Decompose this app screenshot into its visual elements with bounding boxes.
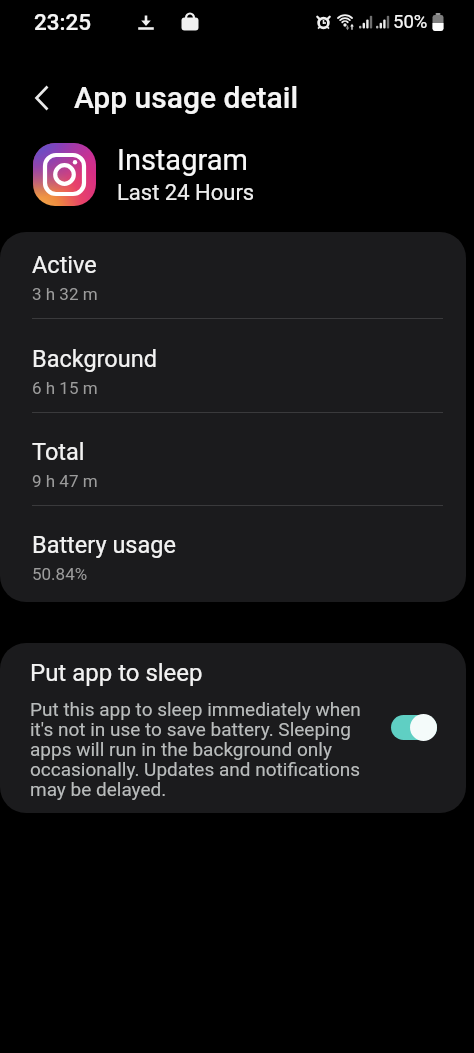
button[interactable] <box>391 714 437 741</box>
button[interactable]: Background <box>0 319 466 412</box>
staticText: Put app to sleep <box>30 659 203 687</box>
staticText: 3 h 32 m <box>32 284 98 304</box>
staticText: Last 24 Hours <box>117 180 255 206</box>
button[interactable] <box>22 78 62 118</box>
button[interactable]: Battery usage <box>0 506 466 602</box>
staticText: 9 h 47 m <box>32 471 98 491</box>
staticText: 50% <box>393 11 428 33</box>
button[interactable]: Total <box>0 413 466 505</box>
staticText: Total <box>32 438 85 466</box>
staticText: Put this app to sleep immediately when i… <box>30 698 361 800</box>
staticText: Active <box>32 251 97 279</box>
staticText: 50.84% <box>32 564 88 584</box>
staticText: Battery usage <box>32 531 176 559</box>
staticText: App usage detail <box>74 80 299 115</box>
staticText: Instagram <box>117 143 248 177</box>
button[interactable]: Active <box>0 232 466 318</box>
staticText: Background <box>32 345 157 373</box>
staticText: 23:25 <box>34 9 92 35</box>
button[interactable]: Put app to sleep <box>0 643 466 813</box>
staticText: 6 h 15 m <box>32 378 98 398</box>
